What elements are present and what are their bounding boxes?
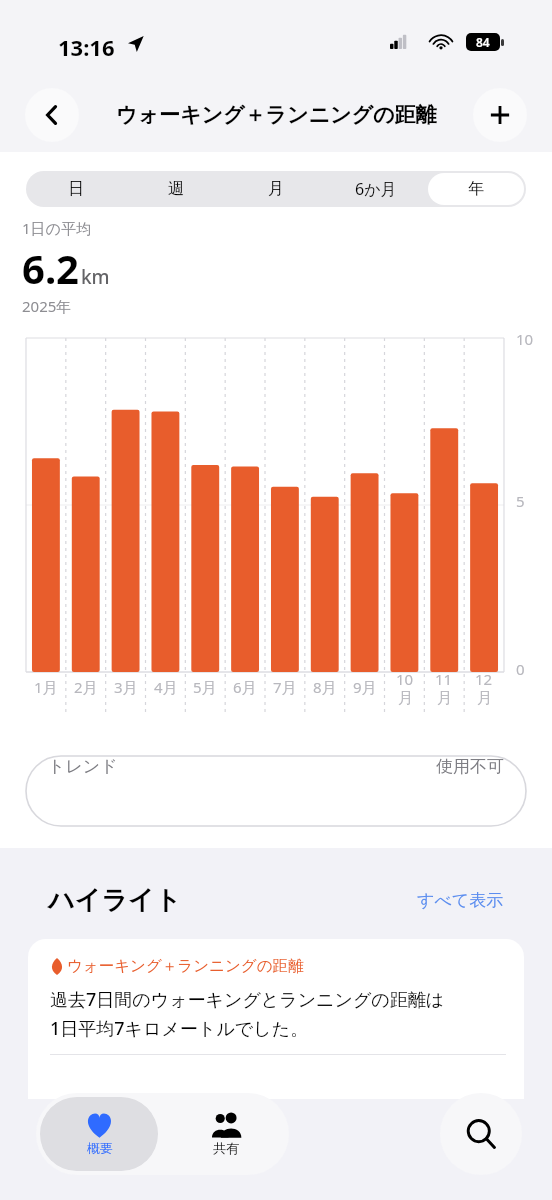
button[interactable]: トレンド xyxy=(26,731,526,801)
staticText: 週 xyxy=(168,179,184,199)
staticText: 共有 xyxy=(213,1140,239,1156)
staticText: 3月 xyxy=(114,677,138,697)
button[interactable]: 共有 xyxy=(162,1093,289,1175)
staticText: 10 xyxy=(396,669,414,689)
staticText: km xyxy=(81,264,110,290)
staticText: 月 xyxy=(437,689,452,708)
button[interactable]: Add data xyxy=(473,88,527,142)
staticText: 0 xyxy=(516,659,525,679)
button[interactable]: 6か月 xyxy=(328,173,424,205)
staticText: 1月 xyxy=(34,677,58,697)
staticText: 1日の平均 xyxy=(22,218,91,238)
button[interactable]: Search xyxy=(440,1093,522,1175)
staticText: 使用不可 xyxy=(436,756,504,777)
staticText: 2025年 xyxy=(22,296,72,316)
staticText: 5 xyxy=(516,491,525,511)
staticText: ハイライト xyxy=(48,884,182,917)
staticText: 月 xyxy=(398,689,413,708)
button[interactable]: すべて表示 xyxy=(417,890,504,911)
staticText: 6.2 xyxy=(22,241,79,295)
button[interactable]: 月 xyxy=(228,173,324,205)
staticText: 過去7日間のウォーキングとランニングの距離は xyxy=(50,987,445,1012)
button[interactable]: ウォーキング＋ランニングの距離 xyxy=(28,939,524,1099)
staticText: 4月 xyxy=(154,677,178,697)
staticText: 月 xyxy=(477,689,492,708)
staticText: 年 xyxy=(468,179,484,199)
staticText: 日 xyxy=(68,179,84,199)
staticText: 13:16 xyxy=(58,32,115,62)
staticText: 5月 xyxy=(193,677,217,697)
staticText: ウォーキング＋ランニングの距離 xyxy=(67,956,304,976)
staticText: トレンド xyxy=(48,756,118,777)
button[interactable]: 概要 xyxy=(40,1097,158,1171)
staticText: 概要 xyxy=(87,1140,113,1156)
staticText: 6月 xyxy=(233,677,257,697)
button[interactable]: 週 xyxy=(128,173,224,205)
staticText: 9月 xyxy=(353,677,377,697)
staticText: 6か月 xyxy=(355,178,397,200)
staticText: ウォーキング＋ランニングの距離 xyxy=(116,102,437,128)
button[interactable]: 年 xyxy=(428,173,524,205)
staticText: 12 xyxy=(475,669,493,689)
staticText: 1日平均7キロメートルでした。 xyxy=(50,1016,308,1041)
button[interactable]: Back xyxy=(25,88,79,142)
staticText: 8月 xyxy=(313,677,337,697)
button[interactable]: 日 xyxy=(28,173,124,205)
staticText: 月 xyxy=(268,179,284,199)
staticText: 84 xyxy=(476,34,490,50)
staticText: 2月 xyxy=(74,677,98,697)
staticText: 10 xyxy=(516,329,534,349)
staticText: すべて表示 xyxy=(417,890,504,911)
staticText: 7月 xyxy=(273,677,297,697)
staticText: 11 xyxy=(435,669,453,689)
